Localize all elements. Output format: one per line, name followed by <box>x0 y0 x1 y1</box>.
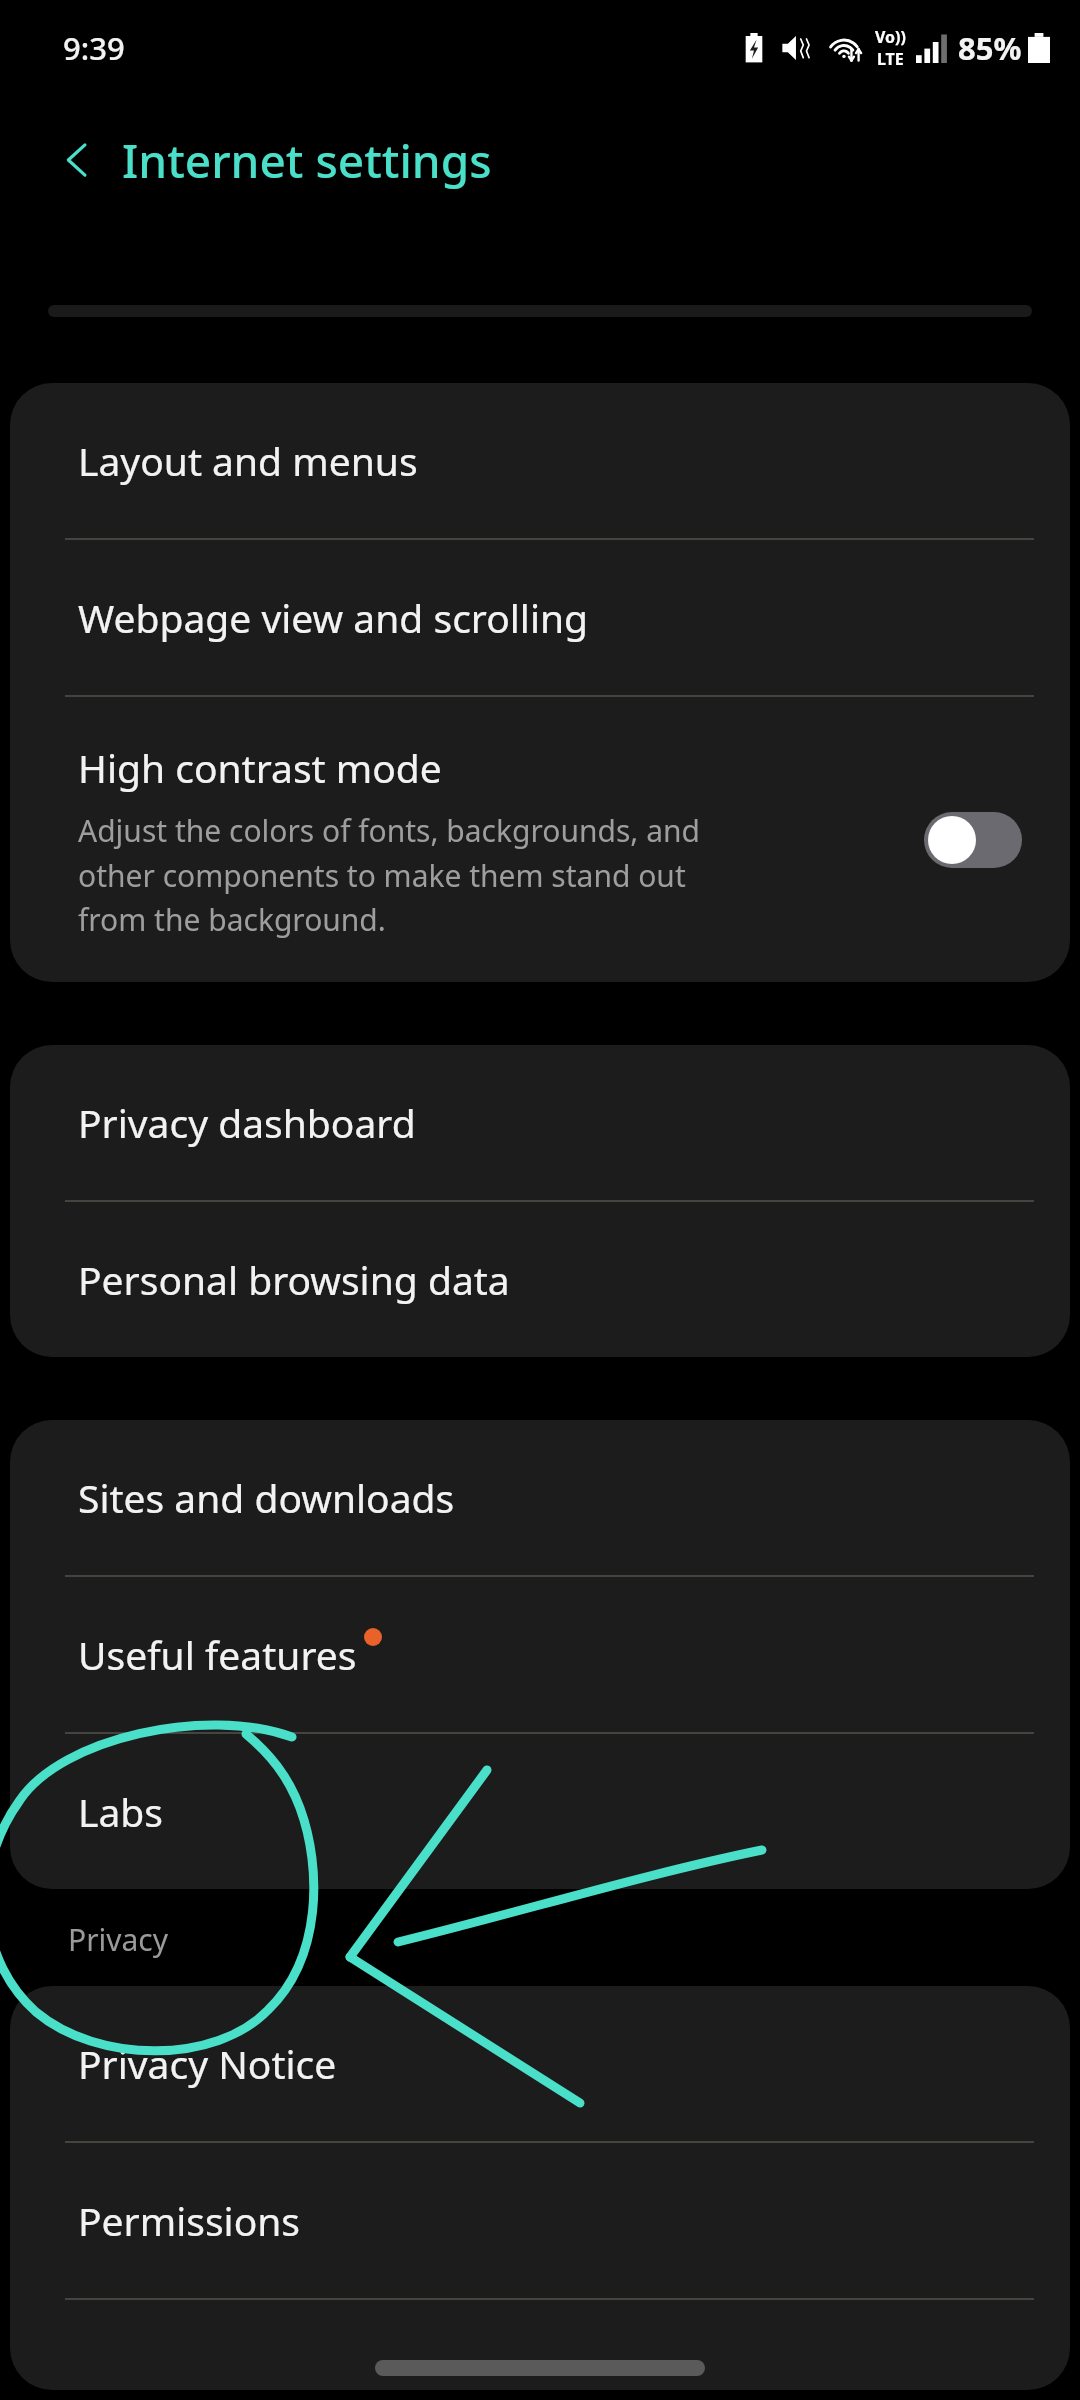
button[interactable]: Webpage view and scrolling <box>10 540 1070 695</box>
staticText: Layout and menus <box>78 434 418 487</box>
staticText: Sites and downloads <box>78 1471 455 1524</box>
staticText: Permissions <box>78 2194 301 2247</box>
staticText: 9:39 <box>63 27 125 69</box>
button[interactable]: Sites and downloads <box>10 1420 1070 1575</box>
button[interactable]: High contrast mode <box>924 812 1022 868</box>
button[interactable]: Labs <box>10 1734 1070 1889</box>
staticText: Privacy dashboard <box>78 1096 416 1149</box>
staticText: High contrast mode <box>78 741 442 794</box>
staticText: Adjust the colors of fonts, backgrounds,… <box>78 810 730 939</box>
button[interactable]: High contrast mode <box>10 697 1070 982</box>
button[interactable]: Privacy Notice <box>10 1986 1070 2141</box>
staticText: Vo)) <box>875 26 906 48</box>
staticText: 85% <box>958 27 1022 69</box>
staticText: Privacy Notice <box>78 2037 337 2090</box>
staticText: LTE <box>877 48 904 70</box>
button[interactable]: Personal browsing data <box>10 1202 1070 1357</box>
staticText: Privacy <box>68 1919 169 1960</box>
button[interactable]: Privacy dashboard <box>10 1045 1070 1200</box>
button[interactable]: Layout and menus <box>10 383 1070 538</box>
button[interactable]: Back <box>46 129 108 191</box>
staticText: Labs <box>78 1785 163 1838</box>
button[interactable]: Useful features <box>10 1577 1070 1732</box>
staticText: Useful features <box>78 1628 357 1681</box>
staticText: Internet settings <box>122 129 492 192</box>
staticText: Personal browsing data <box>78 1253 510 1306</box>
button[interactable]: Permissions <box>10 2143 1070 2298</box>
staticText: Webpage view and scrolling <box>78 591 589 644</box>
